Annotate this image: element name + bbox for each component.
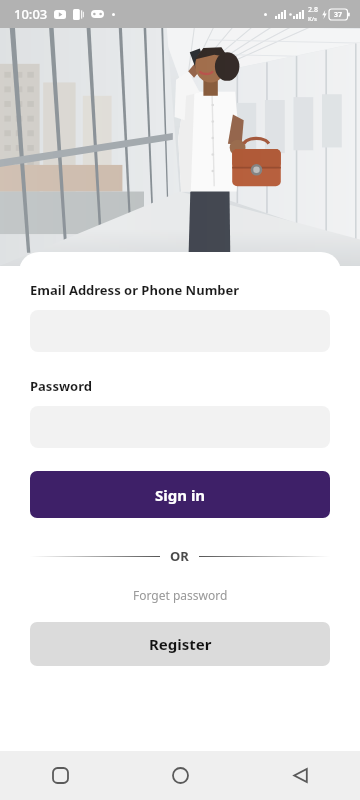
button[interactable]: Recent apps — [0, 751, 120, 800]
staticText: 10:03 — [14, 5, 48, 23]
staticText: 2.8 — [308, 5, 318, 15]
staticText: Register — [149, 634, 212, 654]
staticText: Password — [30, 377, 92, 395]
staticText: Email Address or Phone Number — [30, 281, 240, 299]
button[interactable]: Home — [120, 751, 240, 800]
staticText: K/s — [308, 15, 318, 23]
staticText: 37 — [334, 10, 343, 20]
button[interactable]: Register — [30, 622, 330, 666]
button[interactable]: Sign in — [30, 471, 330, 518]
staticText: Forget password — [133, 587, 228, 603]
button[interactable]: Back — [240, 751, 360, 800]
button[interactable]: Forget password — [19, 587, 341, 603]
staticText: Sign in — [155, 485, 206, 505]
staticText: OR — [170, 547, 189, 565]
